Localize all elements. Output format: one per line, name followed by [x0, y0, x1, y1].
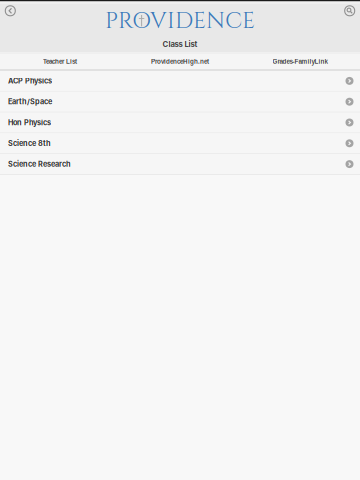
staticText: ACP Physics: [8, 76, 52, 85]
button[interactable]: Back: [1, 2, 19, 20]
button[interactable]: Science 8th: [0, 133, 360, 154]
staticText: Science Research: [8, 160, 71, 169]
button[interactable]: ProvidenceHigh.net: [120, 54, 240, 69]
button[interactable]: Science Research: [0, 154, 360, 175]
staticText: PROVIDENCE: [105, 6, 255, 37]
button[interactable]: Earth/Space: [0, 92, 360, 113]
button[interactable]: Hon Physics: [0, 113, 360, 133]
staticText: Hon Physics: [8, 118, 51, 127]
staticText: Class List: [162, 40, 197, 49]
staticText: ProvidenceHigh.net: [151, 58, 209, 65]
staticText: Teacher List: [43, 58, 77, 65]
button[interactable]: Search: [341, 2, 359, 20]
staticText: Earth/Space: [8, 97, 52, 106]
button[interactable]: Grades-FamilyLink: [240, 54, 360, 69]
staticText: Science 8th: [8, 139, 51, 148]
button[interactable]: Teacher List: [0, 54, 120, 69]
staticText: Grades-FamilyLink: [272, 58, 327, 65]
button[interactable]: ACP Physics: [0, 71, 360, 92]
